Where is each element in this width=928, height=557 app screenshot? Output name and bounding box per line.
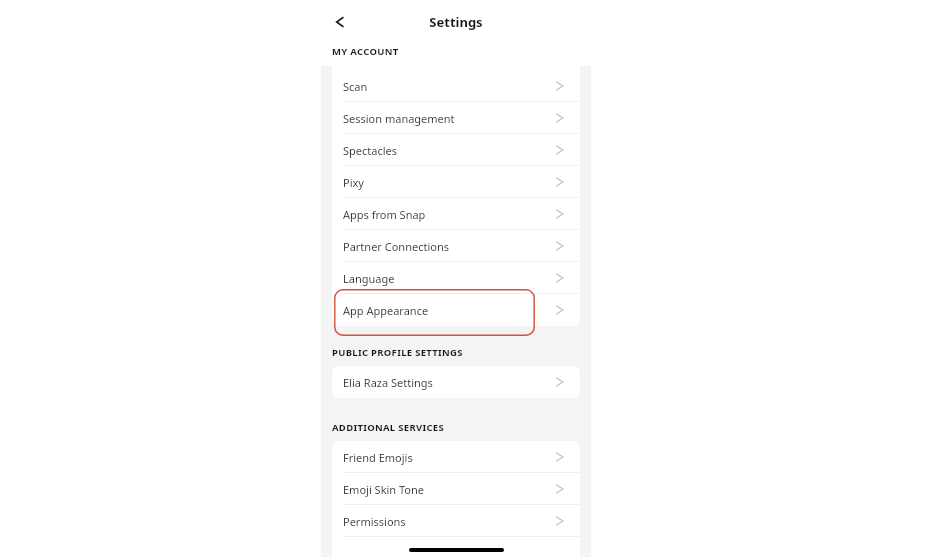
button[interactable]: Language [332, 262, 580, 294]
staticText: Language [343, 271, 553, 286]
button[interactable]: Apps from Snap [332, 198, 580, 230]
staticText: App Appearance [343, 303, 553, 318]
button[interactable]: Partner Connections [332, 230, 580, 262]
staticText: Partner Connections [343, 239, 553, 254]
staticText: PUBLIC PROFILE SETTINGS [332, 346, 463, 359]
button[interactable]: Emoji Skin Tone [332, 473, 580, 505]
staticText: Emoji Skin Tone [343, 482, 553, 497]
staticText: MY ACCOUNT [332, 45, 399, 58]
button[interactable]: Session management [332, 102, 580, 134]
staticText: Scan [343, 79, 553, 94]
staticText: Permissions [343, 514, 553, 529]
staticText: Pixy [343, 175, 553, 190]
staticText: Spectacles [343, 143, 553, 158]
staticText: Session management [343, 111, 553, 126]
button[interactable]: Permissions [332, 505, 580, 537]
button[interactable]: Back [325, 8, 353, 36]
staticText: Friend Emojis [343, 450, 553, 465]
button[interactable]: Scan [332, 70, 580, 102]
button[interactable]: Elia Raza Settings [332, 366, 580, 398]
staticText: Elia Raza Settings [343, 375, 553, 390]
staticText: Settings [429, 13, 483, 31]
button[interactable]: Pixy [332, 166, 580, 198]
button[interactable]: Friend Emojis [332, 441, 580, 473]
staticText: Apps from Snap [343, 207, 553, 222]
button[interactable]: App Appearance [332, 294, 580, 326]
button[interactable]: Spectacles [332, 134, 580, 166]
staticText: ADDITIONAL SERVICES [332, 421, 444, 434]
